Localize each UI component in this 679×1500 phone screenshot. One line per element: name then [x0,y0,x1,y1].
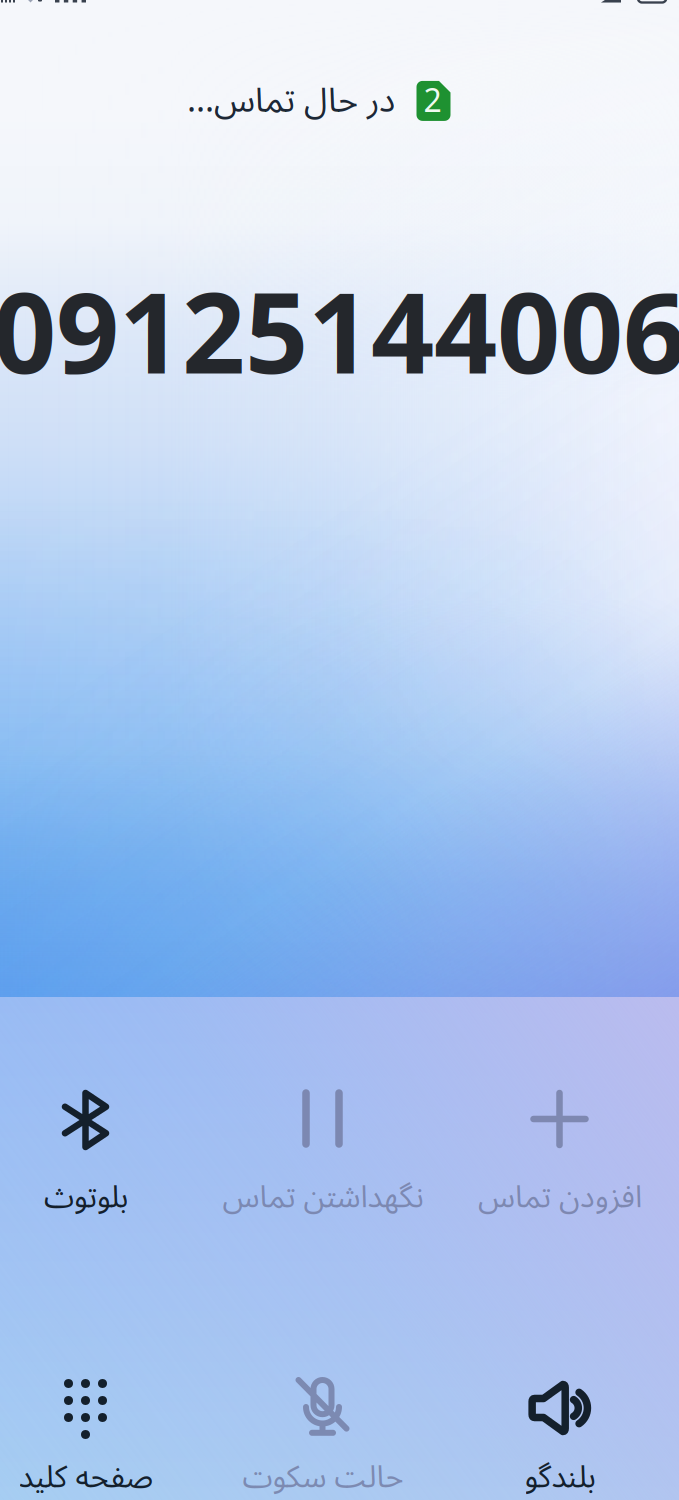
button[interactable]: افزودن تماس [441,1081,678,1281]
staticText: 2 [423,68,441,136]
staticText: بلندگو [524,1445,595,1500]
button[interactable]: بلندگو [441,1355,678,1500]
staticText: 09125144006 [0,257,679,404]
staticText: بلوتوث [43,1165,127,1230]
button[interactable]: حالت سکوت [204,1355,441,1500]
staticText: صفحه کلید [18,1445,153,1500]
button[interactable]: نگهداشتن تماس [204,1081,441,1281]
button[interactable]: صفحه کلید [0,1355,204,1500]
staticText: افزودن تماس [477,1165,641,1230]
staticText: در حال تماس... [186,65,394,137]
staticText: حالت سکوت [242,1445,403,1500]
staticText: نگهداشتن تماس [222,1165,423,1230]
button[interactable]: بلوتوث [0,1081,204,1281]
